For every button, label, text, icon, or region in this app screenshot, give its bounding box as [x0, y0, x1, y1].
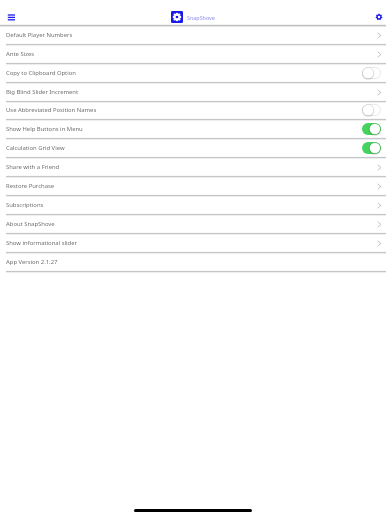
button[interactable]: Restore Purchase — [0, 177, 386, 196]
button[interactable]: Copy to Clipboard Option — [0, 64, 386, 83]
button[interactable]: Open navigation menu — [3, 9, 19, 25]
button[interactable]: App Version 2.1.27 — [0, 253, 386, 272]
button[interactable]: Settings — [371, 9, 386, 25]
staticText: Copy to Clipboard Option — [6, 69, 76, 77]
staticText: Share with a Friend — [6, 163, 60, 171]
button[interactable]: Subscriptions — [0, 196, 386, 215]
button[interactable]: Share with a Friend — [0, 158, 386, 177]
button[interactable]: Show informational slider — [0, 234, 386, 253]
button[interactable]: Ante Sizes — [0, 45, 386, 64]
button[interactable]: Copy to Clipboard Option toggle — [362, 67, 381, 79]
button[interactable]: Show Help Buttons in Menu — [0, 120, 386, 139]
button[interactable]: Default Player Numbers — [0, 26, 386, 45]
staticText: Restore Purchase — [6, 182, 55, 190]
button[interactable]: Calculation Grid View — [0, 139, 386, 158]
button[interactable]: Use Abbreviated Position Names toggle — [362, 104, 381, 116]
staticText: SnapShove — [187, 14, 215, 21]
button[interactable]: About SnapShove — [0, 215, 386, 234]
staticText: Subscriptions — [6, 201, 44, 209]
button[interactable]: Calculation Grid View toggle — [362, 142, 381, 154]
staticText: Ante Sizes — [6, 50, 35, 58]
button[interactable]: Show Help Buttons in Menu toggle — [362, 123, 381, 135]
staticText: Show Help Buttons in Menu — [6, 125, 83, 133]
staticText: App Version 2.1.27 — [6, 258, 58, 266]
staticText: Show informational slider — [6, 239, 77, 247]
staticText: Use Abbreviated Position Names — [6, 106, 97, 114]
staticText: About SnapShove — [6, 220, 55, 228]
staticText: Default Player Numbers — [6, 31, 73, 39]
button[interactable]: Use Abbreviated Position Names — [0, 101, 386, 120]
button[interactable]: Big Blind Slider Increment — [0, 83, 386, 102]
staticText: Big Blind Slider Increment — [6, 88, 79, 96]
staticText: Calculation Grid View — [6, 144, 65, 152]
